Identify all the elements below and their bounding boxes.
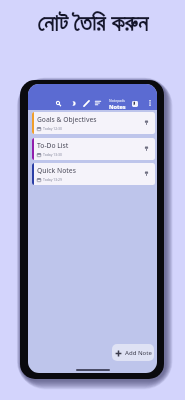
button[interactable]: Notepads (106, 98, 129, 111)
button[interactable]: Dark mode (71, 101, 76, 106)
staticText: To-Do List (37, 141, 69, 150)
staticText: নোট তৈরি করুন (37, 6, 148, 37)
staticText: Add Note (125, 349, 152, 357)
staticText: Today 13:30 (43, 152, 62, 157)
staticText: Today 12:30 (43, 126, 62, 131)
button[interactable]: Add Note (112, 344, 154, 361)
button[interactable]: Quick Notes (32, 163, 155, 185)
staticText: Today 13:29 (43, 177, 62, 182)
button[interactable]: More options (147, 100, 153, 106)
button[interactable]: Pin note (144, 171, 149, 176)
staticText: Quick Notes (37, 166, 76, 175)
button[interactable]: To-Do List (32, 138, 155, 160)
staticText: Goals & Objectives (37, 115, 97, 124)
button[interactable]: Pin note (144, 120, 149, 125)
staticText: Notepads (109, 98, 126, 103)
button[interactable]: Goals & Objectives (32, 112, 155, 134)
button[interactable]: Sort (95, 100, 101, 106)
button[interactable]: Search (56, 101, 61, 106)
button[interactable]: Pin note (144, 146, 149, 151)
button[interactable]: Edit note (83, 100, 90, 107)
staticText: Notes (109, 103, 126, 111)
button[interactable]: Notebooks (132, 101, 138, 107)
